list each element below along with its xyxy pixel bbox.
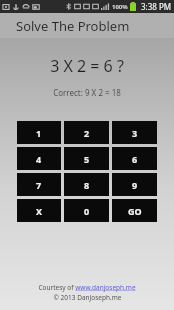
- staticText: © 2013 DanJoseph.me: [53, 293, 122, 302]
- staticText: GO: [128, 205, 142, 217]
- staticText: 5: [84, 153, 90, 165]
- staticText: 4: [36, 153, 42, 165]
- button[interactable]: 2: [64, 121, 109, 144]
- staticText: 3: [132, 127, 138, 139]
- staticText: 0: [84, 205, 90, 217]
- button[interactable]: 3: [112, 121, 157, 144]
- staticText: Solve The Problem: [16, 17, 130, 35]
- staticText: 9: [132, 179, 138, 191]
- staticText: 3:38 PM: [141, 1, 172, 12]
- staticText: 1: [36, 127, 42, 139]
- staticText: Correct: 9 X 2 = 18: [0, 87, 174, 98]
- staticText: 8: [84, 179, 90, 191]
- button[interactable]: X: [17, 199, 61, 222]
- staticText: 6: [132, 153, 138, 165]
- button[interactable]: 5: [64, 147, 109, 170]
- button[interactable]: 9: [112, 173, 157, 196]
- staticText: 2: [84, 127, 90, 139]
- button[interactable]: 0: [64, 199, 109, 222]
- staticText: X: [36, 205, 43, 217]
- staticText: 100%: [112, 3, 128, 11]
- button[interactable]: 6: [112, 147, 157, 170]
- button[interactable]: 7: [17, 173, 61, 196]
- button[interactable]: 1: [17, 121, 61, 144]
- button[interactable]: 8: [64, 173, 109, 196]
- staticText: 3 X 2 = 6 ?: [0, 55, 174, 77]
- button[interactable]: 4: [17, 147, 61, 170]
- staticText: 7: [36, 179, 42, 191]
- button[interactable]: Courtesy of www.danjoseph.me: [36, 282, 138, 293]
- button[interactable]: GO: [112, 199, 157, 222]
